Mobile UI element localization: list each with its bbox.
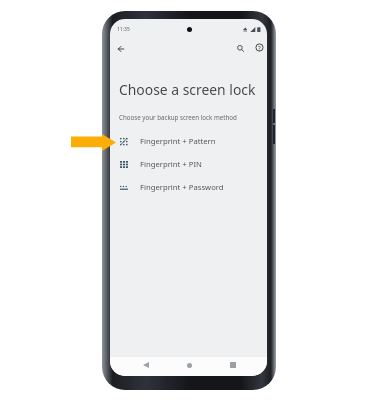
staticText: Fingerprint + Pattern xyxy=(140,136,216,146)
button[interactable]: Fingerprint + PIN xyxy=(110,153,267,175)
staticText: Fingerprint + PIN xyxy=(140,159,202,169)
button[interactable]: Home xyxy=(182,358,196,372)
button[interactable]: Recents xyxy=(226,358,240,372)
button[interactable]: Back xyxy=(113,41,128,56)
staticText: Choose a screen lock xyxy=(119,80,256,99)
staticText: 11:35 xyxy=(117,26,130,33)
staticText: Choose your backup screen lock method xyxy=(119,113,237,121)
staticText: Fingerprint + Password xyxy=(140,182,224,192)
button[interactable]: Back xyxy=(139,358,153,372)
staticText: ? xyxy=(258,44,261,52)
button[interactable]: Fingerprint + Pattern xyxy=(110,130,267,152)
button[interactable]: Fingerprint + Password xyxy=(110,176,267,198)
button[interactable]: Help xyxy=(252,40,267,55)
button[interactable]: Search xyxy=(233,41,248,56)
